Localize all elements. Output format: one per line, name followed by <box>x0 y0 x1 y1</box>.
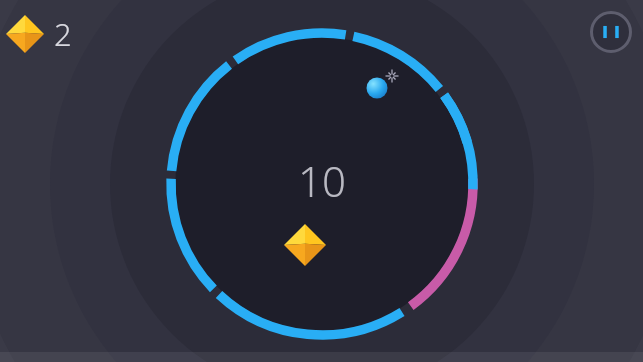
button[interactable]: 2 <box>0 6 100 62</box>
staticText: 2 <box>54 13 72 55</box>
button[interactable]: Pause <box>585 6 637 58</box>
staticText: 10 <box>262 152 382 209</box>
